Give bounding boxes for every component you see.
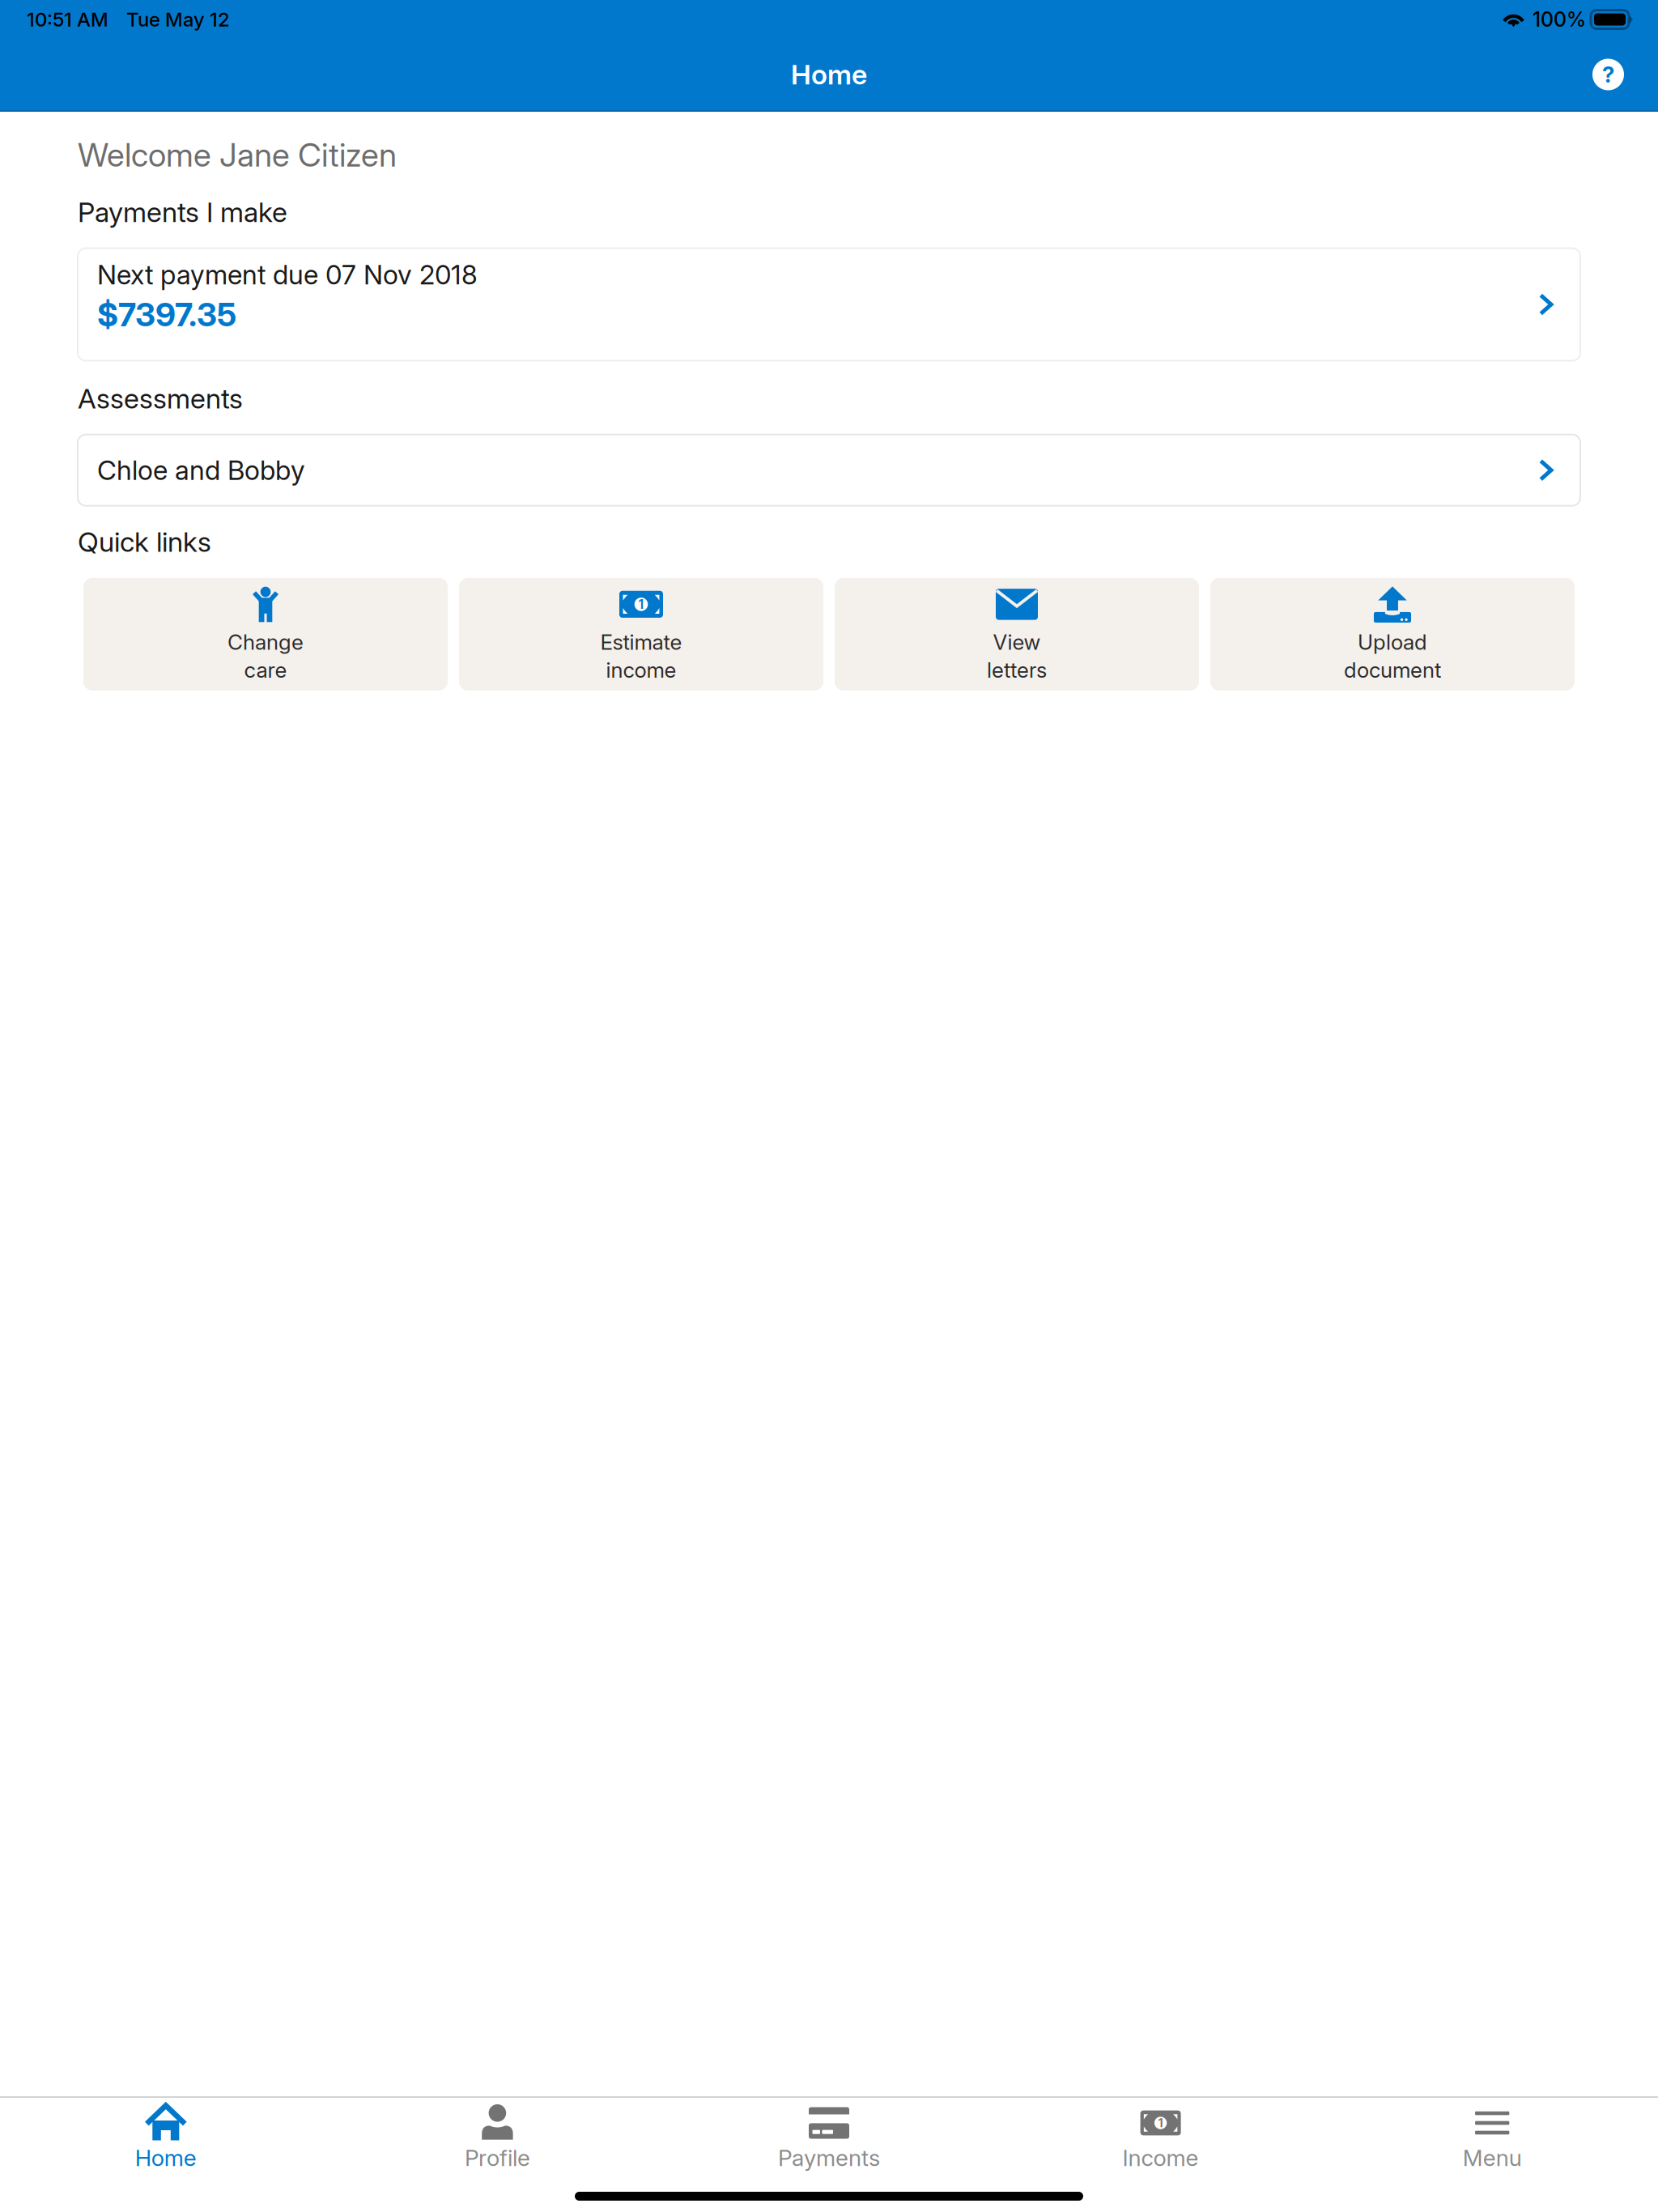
staticText: care bbox=[244, 657, 287, 683]
staticText: Change bbox=[227, 629, 304, 655]
button[interactable]: 1 bbox=[995, 2098, 1326, 2185]
button[interactable]: Help bbox=[1568, 39, 1658, 110]
staticText: Home bbox=[135, 2144, 197, 2171]
staticText: Next payment due 07 Nov 2018 bbox=[97, 259, 478, 291]
staticText: Payments I make bbox=[78, 195, 287, 229]
button[interactable]: Chloe and Bobby bbox=[78, 435, 1580, 506]
staticText: Menu bbox=[1463, 2144, 1522, 2171]
staticText: Home bbox=[791, 58, 867, 91]
staticText: letters bbox=[987, 657, 1047, 683]
staticText: View bbox=[993, 629, 1041, 655]
button[interactable]: Profile bbox=[332, 2098, 663, 2185]
staticText: Payments bbox=[778, 2144, 880, 2171]
button[interactable]: 1 bbox=[459, 578, 823, 690]
staticText: Tue May 12 bbox=[126, 8, 230, 31]
staticText: 1 bbox=[1158, 2116, 1163, 2130]
staticText: $7397.35 bbox=[97, 295, 236, 334]
staticText: Assessments bbox=[78, 382, 243, 415]
staticText: income bbox=[606, 657, 676, 683]
staticText: Quick links bbox=[78, 525, 211, 559]
button[interactable]: Change bbox=[83, 578, 448, 690]
staticText: Welcome Jane Citizen bbox=[78, 135, 397, 174]
staticText: Income bbox=[1123, 2144, 1199, 2171]
staticText: Profile bbox=[465, 2144, 530, 2171]
button[interactable]: Next payment due 07 Nov 2018 bbox=[78, 248, 1580, 361]
button[interactable]: Menu bbox=[1326, 2098, 1658, 2185]
button[interactable]: Home bbox=[0, 2098, 332, 2185]
staticText: 1 bbox=[638, 597, 644, 612]
button[interactable]: Upload bbox=[1210, 578, 1575, 690]
button[interactable]: View bbox=[835, 578, 1199, 690]
staticText: Upload bbox=[1358, 629, 1427, 655]
staticText: 10:51 AM bbox=[27, 8, 108, 31]
staticText: document bbox=[1344, 657, 1441, 683]
staticText: 100% bbox=[1533, 7, 1586, 32]
staticText: ? bbox=[1602, 61, 1614, 88]
button[interactable]: Payments bbox=[663, 2098, 995, 2185]
staticText: Estimate bbox=[600, 629, 682, 655]
staticText: Chloe and Bobby bbox=[97, 454, 305, 486]
